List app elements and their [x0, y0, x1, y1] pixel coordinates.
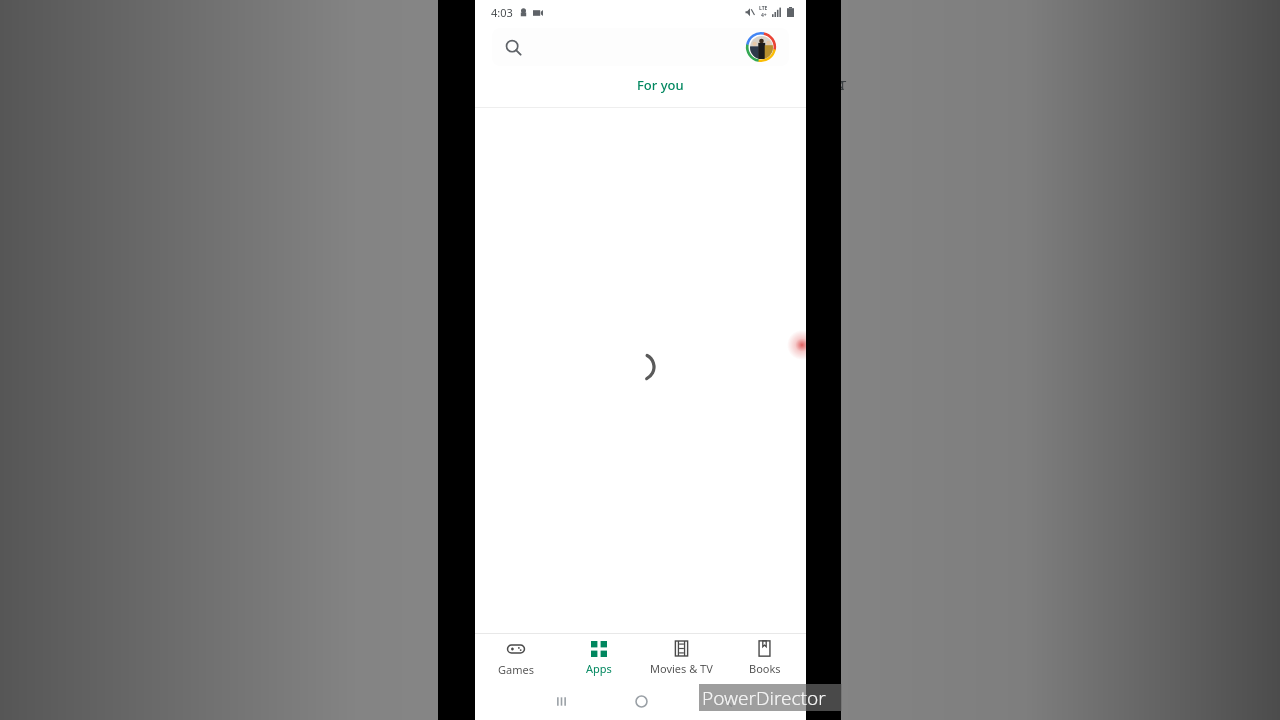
staticText: PowerDirector: [702, 685, 826, 711]
staticText: 4+: [761, 12, 767, 19]
other: Search: [505, 39, 522, 56]
staticText: Books: [749, 661, 781, 676]
staticText: Games: [498, 662, 534, 677]
button[interactable]: Games: [475, 634, 557, 682]
staticText: Apps: [586, 661, 612, 676]
staticText: 4:03: [491, 5, 513, 20]
staticText: Movies & TV: [650, 661, 713, 676]
button[interactable]: Movies & TV: [640, 634, 723, 682]
button[interactable]: For you: [475, 66, 806, 108]
staticText: LTE: [759, 5, 768, 12]
button[interactable]: Account: [746, 32, 776, 62]
staticText: For you: [637, 76, 684, 94]
button[interactable]: Apps: [557, 634, 640, 682]
button[interactable]: Recents: [546, 686, 576, 716]
button[interactable]: Search: [492, 28, 789, 66]
button[interactable]: Books: [723, 634, 806, 682]
button[interactable]: Home: [626, 686, 656, 716]
button[interactable]: Back: [714, 686, 744, 716]
